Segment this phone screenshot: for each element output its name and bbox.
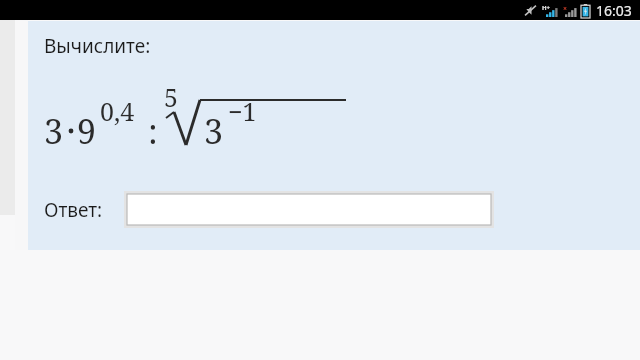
staticText: × [563, 4, 568, 14]
staticText: 9 [77, 108, 97, 154]
staticText: 3 [204, 108, 224, 154]
staticText: −1 [228, 94, 257, 128]
staticText: 0,4 [100, 94, 135, 128]
staticText: Вычислите: [44, 33, 151, 59]
staticText: Ответ: [44, 197, 103, 223]
staticText: : [148, 108, 158, 154]
button[interactable]: Поле ответа [127, 194, 491, 225]
staticText: H+ [542, 4, 551, 12]
staticText: 16:03 [596, 1, 632, 20]
staticText: 5 [164, 80, 178, 114]
staticText: 3 [44, 108, 64, 154]
